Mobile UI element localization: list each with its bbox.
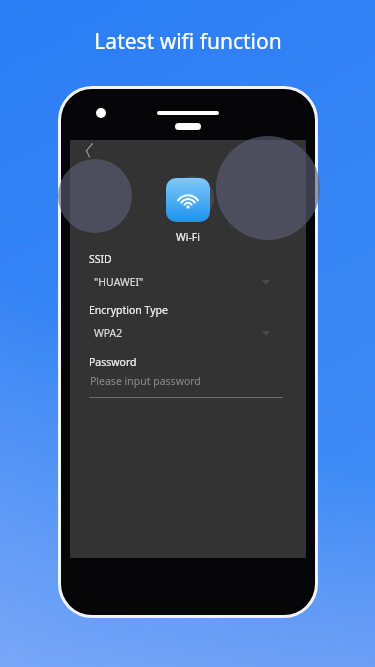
button[interactable]: Please input password xyxy=(89,372,283,398)
staticText: SSID xyxy=(89,252,112,266)
button[interactable]: Wi-Fi xyxy=(166,178,210,222)
staticText: Password xyxy=(89,355,137,369)
button[interactable]: WPA2 xyxy=(89,322,283,344)
staticText: Latest wifi function xyxy=(94,27,282,56)
button[interactable]: Back xyxy=(84,143,94,157)
staticText: Please input password xyxy=(90,374,201,388)
button[interactable]: "HUAWEI" xyxy=(89,271,283,293)
staticText: Encryption Type xyxy=(89,303,168,317)
staticText: "HUAWEI" xyxy=(94,275,144,289)
staticText: WPA2 xyxy=(94,326,123,340)
staticText: Wi-Fi xyxy=(166,230,210,244)
